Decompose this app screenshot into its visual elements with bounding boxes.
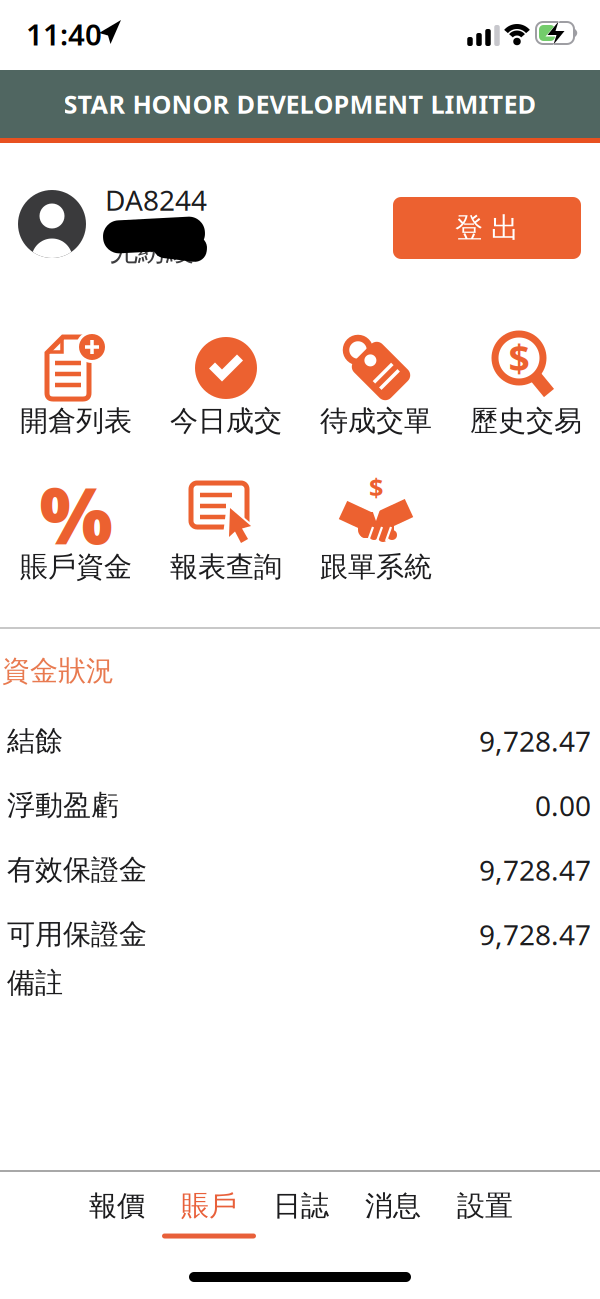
staticText: STAR HONOR DEVELOPMENT LIMITED (63, 87, 536, 121)
staticText: 9,728.47 (479, 916, 591, 953)
button[interactable]: $ (302, 477, 450, 599)
staticText: 跟單系統 (320, 550, 432, 584)
staticText: 設置 (457, 1189, 513, 1223)
staticText: 結餘 (7, 724, 63, 758)
staticText: 開倉列表 (20, 404, 132, 438)
staticText: 報價 (89, 1189, 145, 1223)
staticText: 報表查詢 (170, 550, 282, 584)
staticText: 資金狀況 (2, 654, 114, 688)
staticText: 備註 (7, 966, 63, 1000)
staticText: 賬戶 (181, 1189, 237, 1223)
staticText: 有效保證金 (7, 853, 147, 887)
staticText: 登 出 (455, 211, 519, 245)
button[interactable]: % (2, 477, 150, 599)
staticText: 9,728.47 (479, 851, 591, 889)
staticText: 歷史交易 (470, 404, 582, 438)
button[interactable]: 報表查詢 (152, 477, 300, 599)
staticText: DA8244 (105, 181, 207, 219)
staticText: 0.00 (535, 787, 591, 824)
staticText: 浮動盈虧 (7, 788, 119, 823)
button[interactable]: 賬戶 (165, 1184, 253, 1228)
staticText: $ (508, 333, 529, 383)
staticText: 待成交單 (320, 404, 432, 438)
staticText: 11:40 (26, 14, 102, 53)
button[interactable]: 登 出 (393, 197, 581, 259)
button[interactable]: 消息 (349, 1184, 437, 1228)
staticText: 消息 (365, 1189, 421, 1223)
staticText: 可用保證金 (7, 917, 147, 952)
button[interactable]: 開倉列表 (2, 331, 150, 453)
button[interactable]: 設置 (441, 1184, 529, 1228)
staticText: 尤綉綾 (110, 234, 194, 268)
staticText: 日誌 (273, 1189, 329, 1223)
staticText: 賬戶資金 (20, 550, 132, 584)
staticText: % (39, 463, 112, 565)
staticText: 今日成交 (170, 404, 282, 438)
staticText: $ (369, 470, 383, 504)
button[interactable]: 今日成交 (152, 331, 300, 453)
button[interactable]: 日誌 (257, 1184, 345, 1228)
button[interactable]: 待成交單 (302, 331, 450, 453)
button[interactable]: $ (452, 331, 600, 453)
button[interactable]: 報價 (73, 1184, 161, 1228)
staticText: 9,728.47 (479, 722, 591, 760)
